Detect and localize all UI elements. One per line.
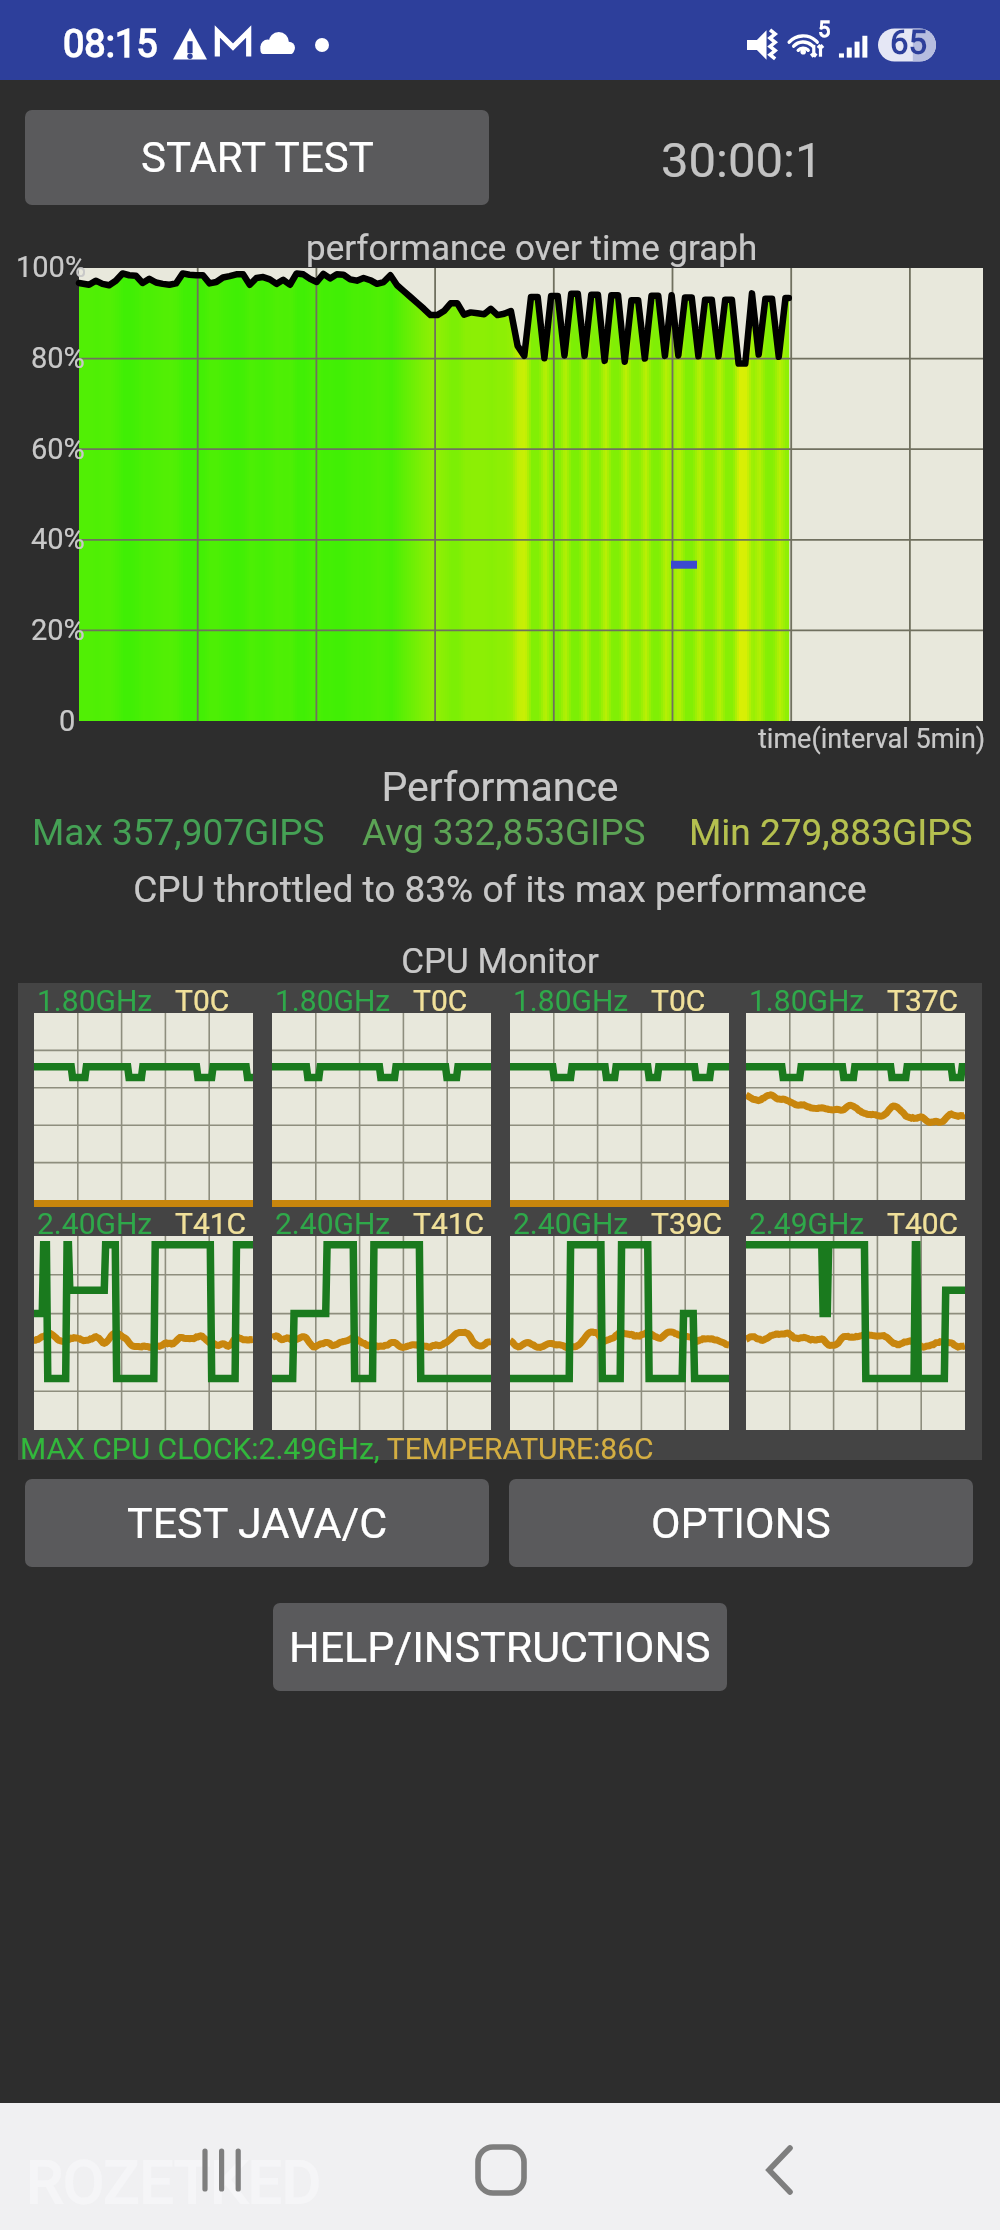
staticText: TEMPERATURE:86C xyxy=(380,1431,654,1466)
staticText: 1.80GHz xyxy=(37,983,153,1018)
staticText: Performance xyxy=(0,763,1000,811)
staticText: 80% xyxy=(31,341,85,375)
button[interactable]: Back xyxy=(720,2103,840,2230)
button[interactable]: START TEST xyxy=(25,110,489,205)
staticText: 1.80GHz xyxy=(749,983,865,1018)
staticText: Max 357,907GIPS xyxy=(32,811,325,854)
staticText: 08:15 xyxy=(63,22,158,67)
staticText: CPU throttled to 83% of its max performa… xyxy=(0,868,1000,911)
staticText: 60% xyxy=(31,432,85,466)
staticText: performance over time graph xyxy=(306,228,758,269)
button[interactable]: Recents xyxy=(162,2103,282,2230)
staticText: 40% xyxy=(31,522,85,556)
staticText: T0C xyxy=(175,983,230,1018)
staticText: 2.40GHz xyxy=(275,1206,391,1241)
button[interactable]: TEST JAVA/C xyxy=(25,1479,489,1567)
staticText: OPTIONS xyxy=(651,1498,831,1548)
staticText: time(interval 5min) xyxy=(758,723,986,755)
button[interactable]: OPTIONS xyxy=(509,1479,973,1567)
staticText: 2.49GHz xyxy=(749,1206,865,1241)
staticText: 65 xyxy=(890,23,928,62)
staticText: 0 xyxy=(59,704,76,738)
button[interactable]: Home xyxy=(441,2103,561,2230)
staticText: T0C xyxy=(413,983,468,1018)
staticText: TEST JAVA/C xyxy=(127,1498,388,1548)
staticText: 1.80GHz xyxy=(275,983,391,1018)
staticText: T0C xyxy=(651,983,706,1018)
staticText: T41C xyxy=(175,1206,247,1241)
staticText: CPU Monitor xyxy=(0,941,1000,982)
staticText: T39C xyxy=(651,1206,723,1241)
staticText: T37C xyxy=(887,983,959,1018)
staticText: T40C xyxy=(887,1206,959,1241)
staticText: START TEST xyxy=(141,133,374,182)
staticText: 2.40GHz xyxy=(513,1206,629,1241)
staticText: HELP/INSTRUCTIONS xyxy=(289,1622,711,1672)
button[interactable]: HELP/INSTRUCTIONS xyxy=(273,1603,727,1691)
staticText: 5 xyxy=(818,17,831,43)
staticText: 1.80GHz xyxy=(513,983,629,1018)
staticText: 100% xyxy=(16,250,87,284)
staticText: 30:00:1 xyxy=(661,132,823,189)
staticText: 20% xyxy=(31,613,85,647)
staticText: Avg 332,853GIPS xyxy=(362,811,646,854)
staticText: MAX CPU CLOCK:2.49GHz, xyxy=(20,1431,380,1466)
staticText: Min 279,883GIPS xyxy=(689,811,973,854)
staticText: ROZETKED xyxy=(26,2147,322,2217)
staticText: 2.40GHz xyxy=(37,1206,153,1241)
staticText: T41C xyxy=(413,1206,485,1241)
